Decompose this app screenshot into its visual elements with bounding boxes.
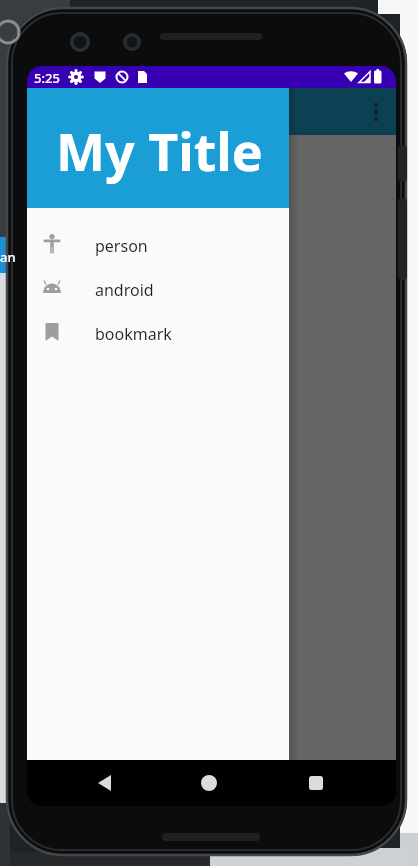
staticText: 5:25: [34, 69, 60, 87]
button[interactable]: bookmark: [27, 310, 289, 354]
staticText: bookmark: [95, 323, 172, 345]
staticText: an: [0, 248, 16, 266]
button[interactable]: android: [27, 266, 289, 310]
staticText: My Title: [56, 115, 263, 186]
button[interactable]: [300, 767, 332, 799]
staticText: android: [95, 279, 154, 301]
button[interactable]: [193, 767, 225, 799]
button[interactable]: [360, 90, 392, 138]
button[interactable]: [89, 767, 121, 799]
button[interactable]: person: [27, 222, 289, 266]
staticText: person: [95, 235, 148, 257]
